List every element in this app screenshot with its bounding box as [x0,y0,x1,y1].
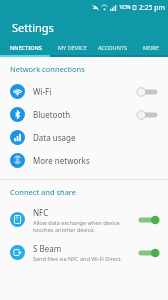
button[interactable]: Wi-Fi [0,80,168,103]
staticText: S Beam [33,243,62,254]
staticText: Bluetooth [33,109,71,120]
staticText: Data usage [33,132,76,143]
button[interactable]: Switch off [136,109,160,121]
button[interactable]: NNECTIONS [0,40,51,55]
staticText: MY DEVICE [58,44,87,51]
staticText: More networks [33,155,90,166]
button[interactable]: MY DEVICE [51,40,93,55]
staticText: Connect and share [10,187,77,197]
staticText: MORE [143,44,159,51]
button[interactable]: MORE [133,40,168,55]
staticText: ACCOUNTS [98,44,128,51]
button[interactable]: NFC [0,203,168,236]
staticText: NNECTIONS [10,44,42,51]
staticText: Wi-Fi [33,86,52,97]
staticText: 2:25 pm [139,3,165,12]
button[interactable]: Switch off [136,86,160,98]
button[interactable]: More networks [0,149,168,172]
staticText: Allow data exchange when device touches … [33,219,120,233]
button[interactable]: Data usage [0,126,168,149]
button[interactable]: Switch on [136,247,160,259]
staticText: Settings [12,20,54,35]
button[interactable]: ACCOUNTS [93,40,133,55]
staticText: Network connections [10,64,85,74]
button[interactable]: Bluetooth [0,103,168,126]
button[interactable]: Switch on [136,214,160,226]
staticText: 103% [119,4,131,10]
staticText: Send files via NFC and Wi-Fi Direct. [33,255,123,262]
button[interactable]: S Beam [0,236,168,269]
staticText: NFC [33,207,49,218]
